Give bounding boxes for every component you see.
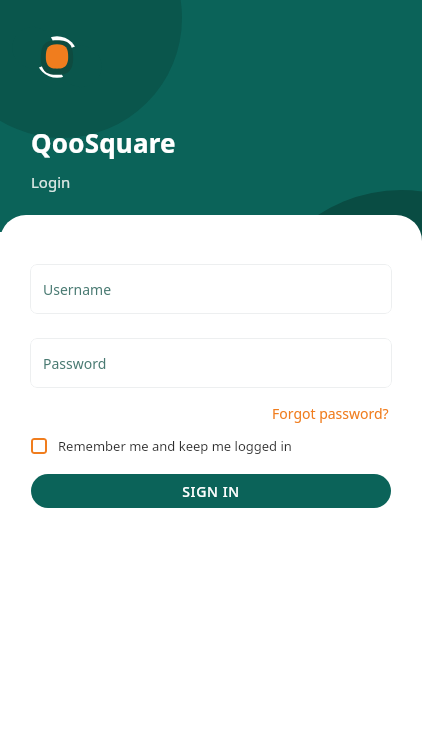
staticText: Forgot password? [272, 404, 389, 423]
button[interactable]: SIGN IN [31, 474, 391, 508]
button[interactable]: Password [30, 338, 392, 388]
button[interactable]: Remember me and keep me logged in [31, 437, 391, 455]
button[interactable]: Forgot password? [270, 402, 391, 425]
staticText: Remember me and keep me logged in [58, 437, 292, 455]
staticText: QooSquare [31, 125, 176, 160]
staticText: Login [31, 172, 71, 192]
staticText: Username [43, 280, 112, 299]
staticText: SIGN IN [182, 482, 240, 501]
staticText: Password [43, 354, 107, 373]
button[interactable]: Username [30, 264, 392, 314]
